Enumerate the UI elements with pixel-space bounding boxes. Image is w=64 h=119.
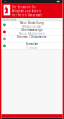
staticText: der Freien Hansestadt <box>12 13 42 17</box>
staticText: Mitarbeiterzahl <box>22 25 42 28</box>
staticText: Neu: Einstellung <box>20 21 44 25</box>
staticText: Wirtschaft und Arbeit <box>12 9 41 13</box>
staticText: Formulare <box>25 42 38 46</box>
staticText: 9:41 <box>4 1 7 2</box>
staticText: Sortierbar <box>3 18 16 21</box>
staticText: Dienste / Dokumente <box>17 35 47 39</box>
staticText: Überlastanzeige <box>21 28 43 32</box>
staticText: 5 neue <box>26 46 37 49</box>
staticText: Neue Meldungen <box>19 32 45 35</box>
button[interactable]: Dienste / Dokumente <box>2 36 62 43</box>
button[interactable]: Formulare <box>2 43 62 50</box>
button[interactable]: Überlastanzeige <box>2 29 62 36</box>
staticText: Die Senatorin für <box>12 5 36 9</box>
button[interactable]: Neu: Einstellung <box>2 22 62 29</box>
